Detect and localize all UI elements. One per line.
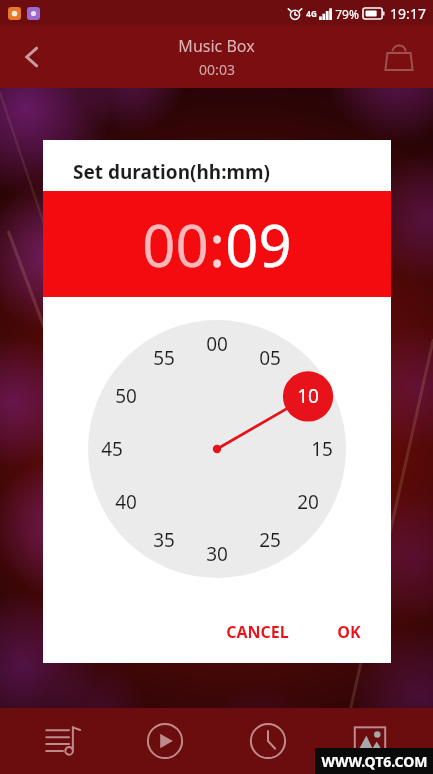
staticText: WWW.QT6.COM bbox=[321, 752, 428, 771]
button[interactable]: 35 bbox=[142, 518, 186, 562]
staticText: 10 bbox=[297, 383, 319, 409]
staticText: 00 bbox=[142, 205, 209, 284]
staticText: 19:17 bbox=[390, 4, 426, 23]
staticText: 25 bbox=[259, 527, 281, 553]
button[interactable]: Back bbox=[6, 31, 58, 83]
button[interactable]: Timer bbox=[229, 711, 307, 771]
button[interactable]: 20 bbox=[286, 480, 330, 524]
staticText: Music Box bbox=[178, 35, 255, 57]
staticText: 4G bbox=[306, 8, 317, 19]
button[interactable]: 50 bbox=[104, 374, 148, 418]
button[interactable]: 10 bbox=[286, 374, 330, 418]
button[interactable]: Play bbox=[126, 711, 204, 771]
button[interactable]: 00 bbox=[142, 205, 209, 284]
button[interactable]: 15 bbox=[300, 427, 344, 471]
staticText: 35 bbox=[153, 527, 175, 553]
staticText: OK bbox=[337, 621, 361, 643]
button[interactable]: 30 bbox=[195, 532, 239, 576]
button[interactable]: Playlist bbox=[24, 711, 102, 771]
staticText: 30 bbox=[206, 541, 228, 567]
staticText: Set duration(hh:mm) bbox=[73, 159, 270, 185]
staticText: 00 bbox=[206, 331, 228, 357]
staticText: 05 bbox=[259, 345, 281, 371]
button[interactable]: 05 bbox=[248, 336, 292, 380]
staticText: 15 bbox=[311, 436, 333, 462]
staticText: : bbox=[209, 205, 225, 284]
button[interactable]: 25 bbox=[248, 518, 292, 562]
staticText: 09 bbox=[225, 205, 292, 284]
button[interactable]: CANCEL bbox=[212, 611, 303, 653]
button[interactable]: 00 bbox=[195, 322, 239, 366]
button[interactable]: 55 bbox=[142, 336, 186, 380]
staticText: 45 bbox=[101, 436, 123, 462]
button[interactable]: 45 bbox=[90, 427, 134, 471]
staticText: 79% bbox=[335, 6, 359, 22]
staticText: 40 bbox=[115, 489, 137, 515]
button[interactable]: OK bbox=[323, 611, 375, 653]
staticText: 00:03 bbox=[199, 60, 235, 79]
button[interactable]: Shop bbox=[373, 31, 425, 83]
staticText: 55 bbox=[153, 345, 175, 371]
button[interactable]: 09 bbox=[225, 205, 292, 284]
button[interactable]: Gallery bbox=[331, 711, 409, 771]
button[interactable]: 40 bbox=[104, 480, 148, 524]
staticText: CANCEL bbox=[226, 621, 289, 643]
staticText: 50 bbox=[115, 383, 137, 409]
staticText: 20 bbox=[297, 489, 319, 515]
